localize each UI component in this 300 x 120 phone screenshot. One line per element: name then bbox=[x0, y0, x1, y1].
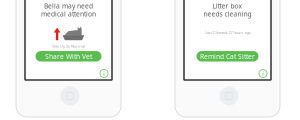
button[interactable]: Remind Cat Sitter bbox=[196, 51, 258, 61]
button[interactable]: Share With Vet bbox=[35, 51, 101, 61]
staticText: medical attention bbox=[41, 10, 96, 18]
staticText: Bella may need bbox=[44, 2, 93, 10]
staticText: Remind Cat Sitter bbox=[200, 52, 255, 61]
staticText: Litter box bbox=[212, 2, 242, 10]
button[interactable]: More information bbox=[258, 68, 268, 78]
staticText: needs cleaning bbox=[203, 10, 251, 18]
staticText: Last Cleaned: 27 hours ago bbox=[204, 30, 250, 35]
button[interactable]: More information bbox=[99, 68, 109, 78]
staticText: Vets Up 2x Normal bbox=[52, 44, 85, 49]
staticText: Share With Vet bbox=[45, 52, 92, 61]
